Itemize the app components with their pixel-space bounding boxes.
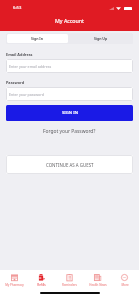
button[interactable]: Sign In: [7, 34, 68, 43]
staticText: Reminders: [62, 283, 77, 287]
button[interactable]: Reminders: [56, 274, 83, 287]
staticText: 6:53: [13, 5, 22, 11]
staticText: Email Address: [6, 52, 33, 57]
button[interactable]: More: [111, 274, 138, 287]
staticText: My Account: [55, 17, 85, 24]
staticText: My Pharmacy: [5, 283, 24, 287]
staticText: Password: [6, 80, 25, 85]
staticText: Enter your email address: [9, 64, 52, 69]
staticText: CONTINUE AS A GUEST: [46, 162, 94, 168]
button[interactable]: Refills: [28, 274, 55, 287]
staticText: Sign Up: [94, 36, 108, 41]
button[interactable]: Sign Up: [69, 33, 133, 44]
staticText: Refills: [37, 283, 46, 287]
button[interactable]: My Pharmacy: [1, 274, 28, 287]
staticText: SIGN IN: [62, 110, 78, 116]
button[interactable]: SIGN IN: [6, 105, 133, 121]
staticText: Sign In: [31, 36, 44, 41]
staticText: More: [121, 283, 129, 287]
button[interactable]: Forgot your Password?: [43, 128, 96, 135]
button[interactable]: CONTINUE AS A GUEST: [6, 155, 133, 174]
staticText: Enter your password: [9, 92, 44, 97]
button[interactable]: Health News: [84, 274, 111, 287]
staticText: Health News: [89, 283, 107, 287]
